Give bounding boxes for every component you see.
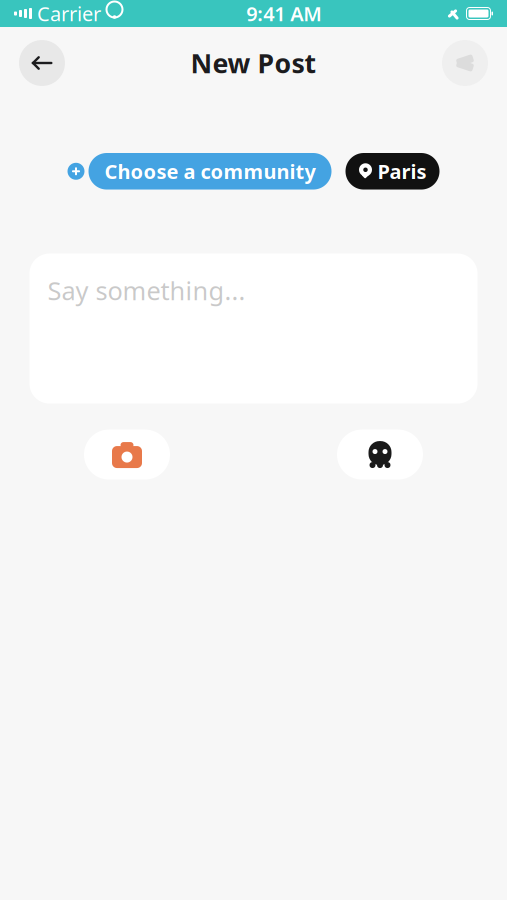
- button[interactable]: Say something...: [29, 254, 477, 404]
- staticText: Paris: [377, 158, 426, 185]
- staticText: New Post: [190, 45, 316, 81]
- staticText: Say something...: [47, 274, 245, 307]
- staticText: Carrier: [37, 0, 101, 27]
- button[interactable]: Back: [19, 40, 65, 86]
- staticText: 9:41 AM: [246, 0, 322, 27]
- button[interactable]: Post anonymously: [337, 430, 423, 480]
- staticText: Choose a community: [104, 158, 315, 185]
- button[interactable]: Paris: [345, 153, 439, 190]
- button[interactable]: Choose a community: [67, 153, 331, 190]
- button[interactable]: Add photo: [84, 430, 170, 480]
- button[interactable]: Send: [442, 40, 488, 86]
